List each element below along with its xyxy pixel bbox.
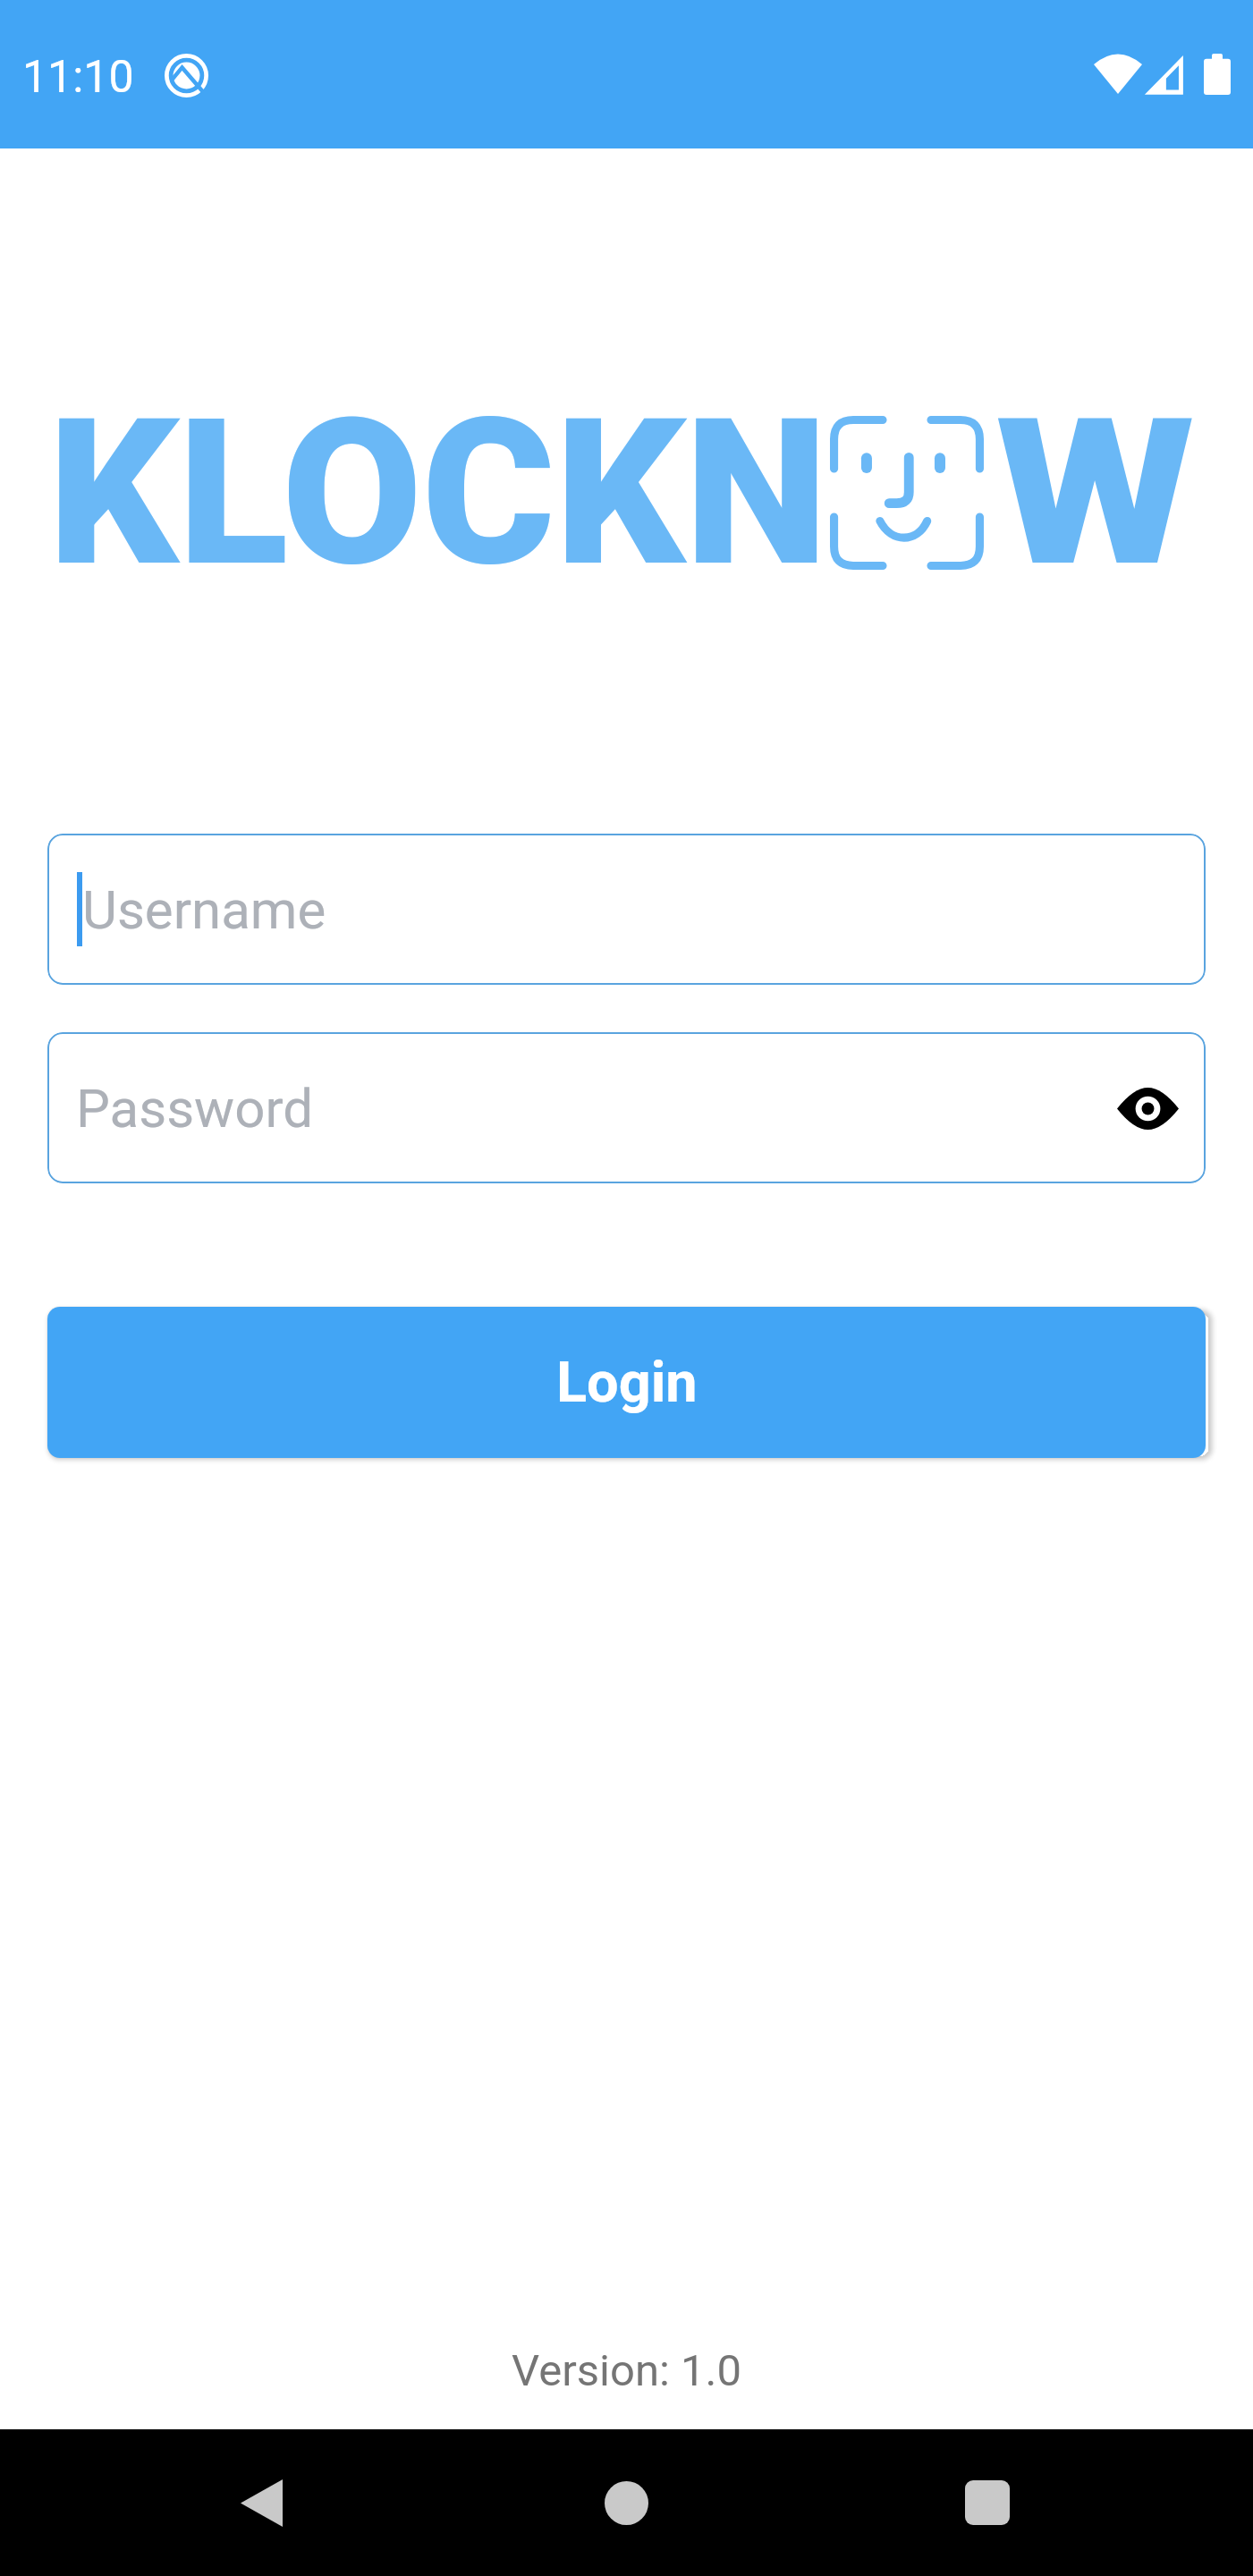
staticText: 11:10: [22, 51, 134, 104]
button[interactable]: Home: [563, 2440, 689, 2565]
button[interactable]: Back: [199, 2440, 324, 2565]
button[interactable]: Password: [47, 1032, 1206, 1183]
staticText: Username: [82, 878, 326, 941]
staticText: Password: [76, 1077, 314, 1140]
staticText: Login: [556, 1350, 698, 1416]
button[interactable]: Recent apps: [925, 2440, 1050, 2565]
button[interactable]: Username: [47, 834, 1206, 985]
staticText: W: [996, 374, 1196, 612]
button[interactable]: Show password: [1109, 1070, 1186, 1147]
button[interactable]: Login: [47, 1307, 1206, 1458]
staticText: Version: 1.0: [512, 2345, 741, 2396]
staticText: KLOCKN: [48, 374, 828, 612]
